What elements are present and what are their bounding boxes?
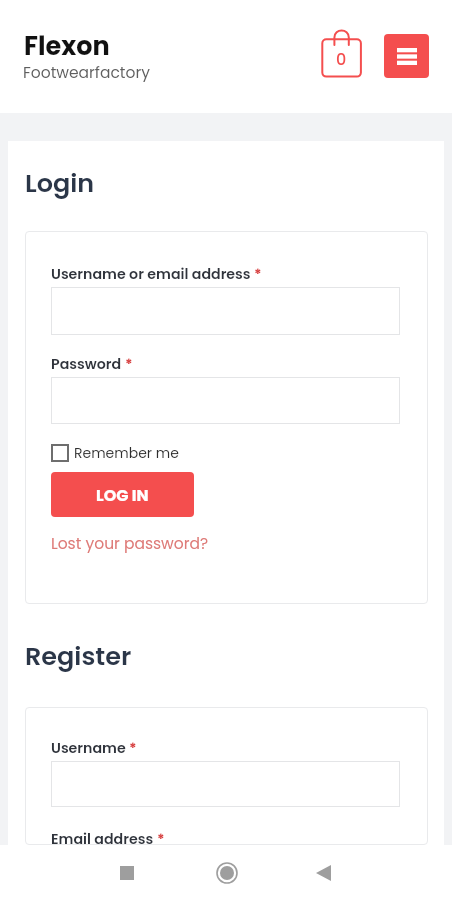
staticText: Flexon: [24, 28, 110, 64]
button[interactable]: Recents: [103, 849, 150, 896]
button[interactable]: LOG IN: [51, 472, 194, 517]
staticText: Username or email address: [51, 264, 251, 284]
staticText: Register: [25, 638, 132, 674]
button[interactable]: Menu: [384, 34, 429, 78]
staticText: Footwearfactory: [23, 62, 150, 84]
button[interactable]: [51, 377, 400, 424]
staticText: Remember me: [74, 443, 179, 463]
staticText: Username: [51, 738, 126, 758]
staticText: Password: [51, 354, 122, 374]
staticText: Login: [25, 165, 95, 201]
staticText: *: [126, 738, 137, 758]
button[interactable]: Lost your password?: [51, 533, 209, 555]
button[interactable]: Remember me: [51, 443, 179, 463]
button[interactable]: [51, 287, 400, 335]
staticText: *: [251, 264, 262, 284]
staticText: *: [122, 354, 133, 374]
button[interactable]: Home: [203, 849, 250, 896]
staticText: Email address: [51, 829, 154, 845]
button[interactable]: [51, 761, 400, 807]
button[interactable]: Cart: [318, 27, 366, 75]
staticText: 0: [336, 48, 347, 70]
staticText: *: [154, 829, 165, 845]
button[interactable]: Back: [300, 849, 347, 896]
staticText: LOG IN: [96, 484, 149, 506]
